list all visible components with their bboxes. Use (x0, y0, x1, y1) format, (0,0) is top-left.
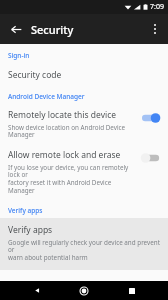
button[interactable]: Verify apps (0, 218, 168, 270)
staticText: Show device location on Android Device M… (8, 123, 136, 139)
staticText: 7:09 (150, 2, 164, 12)
button[interactable]: Remotely locate this device on (140, 112, 162, 124)
staticText: Android Device Manager (8, 92, 85, 101)
button[interactable]: Security code (0, 63, 168, 88)
button[interactable]: Allow remote lock and erase (0, 144, 168, 200)
staticText: Google will regularly check your device … (8, 238, 160, 262)
button[interactable]: Recent apps (121, 281, 143, 300)
button[interactable]: Remotely locate this device (0, 104, 168, 144)
staticText: If you lose your device, you can remotel… (8, 163, 136, 195)
staticText: Remotely locate this device (8, 109, 117, 121)
staticText: Security (31, 22, 74, 37)
staticText: Sign-in (8, 51, 30, 60)
button[interactable]: Back (7, 20, 25, 38)
button[interactable]: More options (146, 20, 164, 38)
staticText: Security code (8, 69, 62, 81)
staticText: Verify apps (8, 224, 53, 236)
staticText: Allow remote lock and erase (8, 149, 121, 161)
button[interactable]: Back (26, 281, 48, 300)
button[interactable]: Allow remote lock and erase off (140, 152, 162, 164)
button[interactable]: Home (73, 281, 95, 300)
staticText: Verify apps (8, 206, 43, 215)
